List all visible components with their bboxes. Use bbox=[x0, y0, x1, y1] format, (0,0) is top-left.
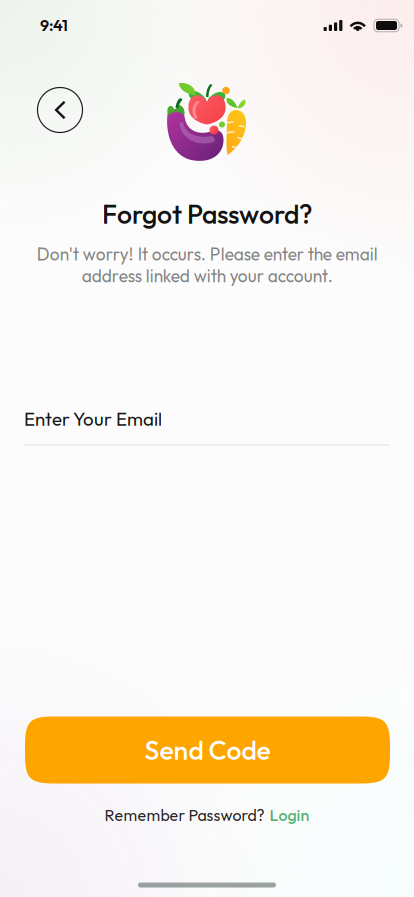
staticText: 9:41 bbox=[40, 15, 68, 35]
button[interactable]: Send Code bbox=[25, 716, 390, 783]
staticText: Forgot Password? bbox=[102, 197, 312, 231]
staticText: Remember Password? bbox=[104, 805, 264, 825]
button[interactable]: Enter Your Email bbox=[24, 399, 390, 445]
button[interactable]: Login bbox=[269, 805, 309, 825]
staticText: Login bbox=[269, 805, 309, 825]
staticText: Enter Your Email bbox=[24, 407, 162, 430]
button[interactable]: Back bbox=[37, 87, 82, 132]
staticText: Don't worry! It occurs. Please enter the… bbox=[36, 243, 377, 287]
staticText: Send Code bbox=[144, 733, 270, 767]
